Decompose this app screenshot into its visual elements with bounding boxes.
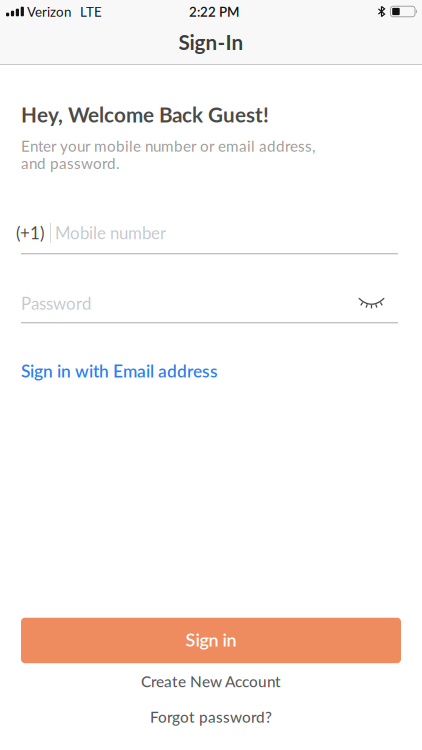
- button[interactable]: Sign in: [21, 618, 401, 663]
- button[interactable]: (+1): [21, 222, 401, 254]
- staticText: LTE: [80, 3, 102, 19]
- button[interactable]: Create New Account: [21, 672, 401, 691]
- staticText: Verizon: [27, 3, 71, 19]
- staticText: Hey, Welcome Back Guest!: [21, 102, 269, 127]
- staticText: Sign in with Email address: [21, 360, 218, 381]
- button[interactable]: Forgot password?: [21, 708, 401, 726]
- staticText: Mobile number: [55, 223, 166, 243]
- staticText: 2:22 PM: [189, 3, 239, 19]
- button[interactable]: Sign in with Email address: [21, 360, 218, 381]
- staticText: Password: [21, 293, 91, 313]
- staticText: Forgot password?: [150, 708, 272, 726]
- staticText: (+1): [16, 223, 44, 243]
- staticText: Create New Account: [141, 672, 281, 691]
- staticText: Enter your mobile number or email addres…: [21, 137, 315, 172]
- staticText: Sign-In: [178, 30, 243, 54]
- button[interactable]: Password: [21, 293, 401, 323]
- staticText: Sign in: [185, 629, 236, 650]
